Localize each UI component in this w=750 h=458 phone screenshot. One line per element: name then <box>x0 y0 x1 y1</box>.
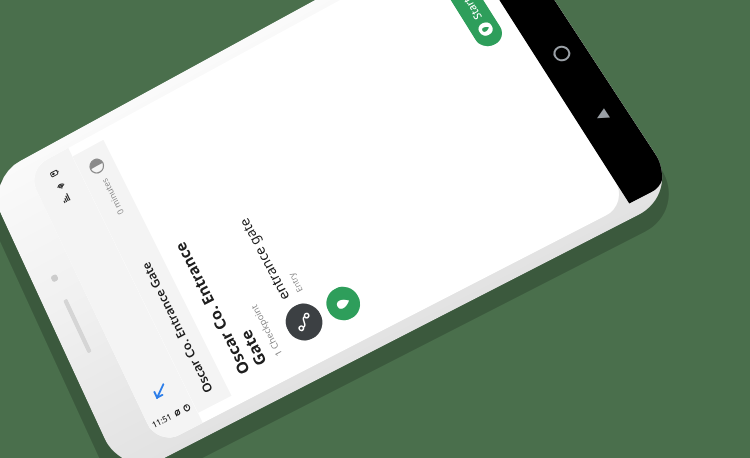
staticText: Entry <box>285 271 305 294</box>
button[interactable]: Recents <box>505 0 540 9</box>
button[interactable]: Home <box>541 35 582 72</box>
staticText: 0 minutes <box>98 176 126 217</box>
staticText: 1 Checkpoint <box>247 302 285 359</box>
button[interactable]: Back <box>143 374 176 408</box>
staticText: Oscar Co. Entrance Gate <box>170 230 271 378</box>
staticText: entrance gate <box>235 215 293 304</box>
button[interactable]: Start Tour <box>435 0 507 51</box>
staticText: 11:51 <box>150 410 174 430</box>
button[interactable]: entrance gate <box>162 84 343 363</box>
button[interactable]: Entry point <box>206 66 379 338</box>
button[interactable]: Duration <box>86 155 108 177</box>
staticText: Oscar Co. Entrance Gate <box>114 211 216 396</box>
button[interactable]: Back <box>583 99 620 132</box>
staticText: Start Tour <box>446 0 485 22</box>
other: Entry point <box>320 281 366 326</box>
